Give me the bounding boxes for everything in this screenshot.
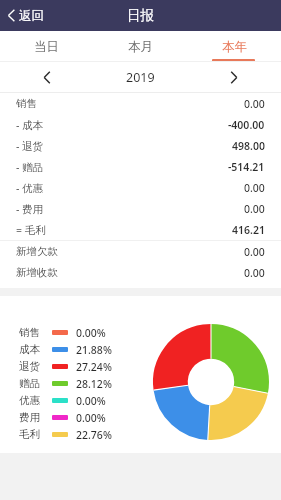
button[interactable]: - 成本 [0, 114, 281, 135]
staticText: 新增欠款 [16, 245, 58, 258]
staticText: 0.00% [76, 394, 106, 408]
button[interactable]: 新增收款 [0, 262, 281, 283]
staticText: 0.00% [76, 326, 106, 340]
staticText: - 优惠 [16, 181, 44, 195]
staticText: 当日 [34, 39, 59, 55]
staticText: 新增收款 [16, 266, 58, 279]
button[interactable]: 新增欠款 [0, 241, 281, 262]
staticText: -400.00 [228, 118, 265, 132]
staticText: 2019 [126, 69, 155, 86]
staticText: - 赠品 [16, 160, 44, 174]
staticText: 28.12% [76, 377, 112, 391]
staticText: -514.21 [228, 160, 265, 174]
button[interactable]: - 费用 [0, 198, 281, 219]
staticText: 0.00 [244, 245, 265, 259]
button[interactable]: Previous year [34, 64, 60, 90]
staticText: 498.00 [232, 139, 265, 153]
staticText: - 退货 [16, 139, 44, 153]
button[interactable]: 销售 [0, 93, 281, 114]
button[interactable]: - 优惠 [0, 177, 281, 198]
staticText: 返回 [19, 8, 44, 24]
staticText: 成本 [19, 343, 40, 356]
button[interactable]: Next year [221, 64, 247, 90]
staticText: 0.00 [244, 202, 265, 216]
staticText: 0.00 [244, 266, 265, 280]
staticText: 本月 [128, 39, 153, 55]
staticText: - 费用 [16, 202, 44, 216]
staticText: 0.00 [244, 97, 265, 111]
button[interactable]: 本年 [187, 31, 281, 62]
staticText: 费用 [19, 411, 40, 424]
staticText: 赠品 [19, 377, 40, 390]
staticText: = 毛利 [16, 223, 46, 237]
staticText: 退货 [19, 360, 40, 373]
staticText: 优惠 [19, 394, 40, 407]
button[interactable]: 返回 [0, 0, 52, 31]
staticText: 销售 [16, 97, 37, 110]
staticText: 本年 [222, 39, 247, 55]
staticText: 21.88% [76, 343, 112, 357]
staticText: 0.00 [244, 181, 265, 195]
staticText: 416.21 [232, 223, 265, 237]
button[interactable]: - 退货 [0, 135, 281, 156]
button[interactable]: 当日 [0, 31, 93, 62]
button[interactable]: = 毛利 [0, 219, 281, 240]
button[interactable]: 本月 [93, 31, 187, 62]
staticText: 日报 [127, 7, 154, 24]
staticText: 销售 [19, 326, 40, 339]
staticText: 毛利 [19, 428, 40, 441]
button[interactable]: - 赠品 [0, 156, 281, 177]
staticText: 27.24% [76, 360, 112, 374]
staticText: 22.76% [76, 428, 112, 442]
staticText: - 成本 [16, 118, 44, 132]
staticText: 0.00% [76, 411, 106, 425]
